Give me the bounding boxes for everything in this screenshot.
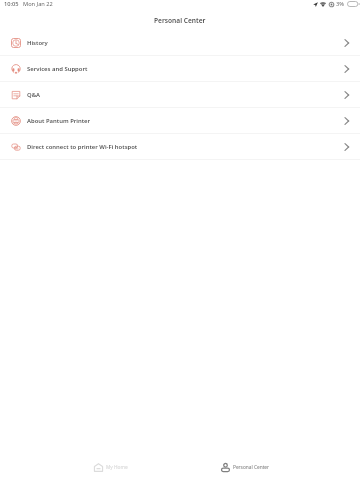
button[interactable]: Q&A [0, 82, 360, 108]
staticText: Services and Support [27, 65, 88, 73]
staticText: Personal Center [233, 464, 270, 471]
staticText: 3% [336, 0, 344, 8]
button[interactable]: Personal Center [217, 459, 274, 476]
staticText: Q&A [27, 91, 40, 99]
staticText: About Pantum Printer [27, 117, 91, 125]
staticText: Direct connect to printer Wi-Fi hotspot [27, 143, 138, 151]
staticText: Personal Center [154, 16, 206, 25]
button[interactable]: Direct connect to printer Wi-Fi hotspot [0, 134, 360, 160]
button[interactable]: My Home [90, 459, 132, 476]
staticText: 10:05 [4, 0, 19, 8]
staticText: Mon Jan 22 [23, 0, 53, 8]
button[interactable]: History [0, 30, 360, 56]
button[interactable]: Services and Support [0, 56, 360, 82]
staticText: History [27, 39, 48, 47]
staticText: My Home [106, 464, 128, 471]
button[interactable]: About Pantum Printer [0, 108, 360, 134]
